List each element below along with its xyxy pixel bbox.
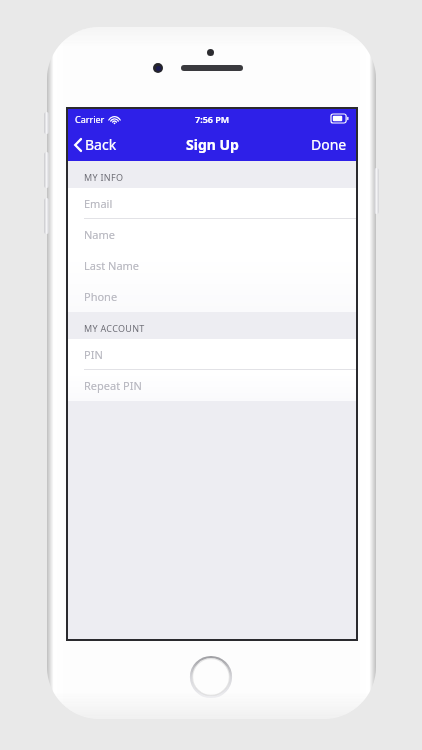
button[interactable]: Name xyxy=(68,219,356,250)
staticText: Carrier xyxy=(75,113,105,125)
staticText: PIN xyxy=(84,347,103,362)
button[interactable]: Home xyxy=(189,655,233,699)
staticText: MY ACCOUNT xyxy=(84,322,145,334)
staticText: Last Name xyxy=(84,258,140,273)
staticText: Back xyxy=(85,135,117,154)
button[interactable]: Side button xyxy=(44,112,49,134)
button[interactable]: Email xyxy=(68,188,356,219)
staticText: Done xyxy=(311,135,347,154)
staticText: 7:56 PM xyxy=(195,113,230,125)
button[interactable]: Done xyxy=(302,128,356,161)
staticText: Repeat PIN xyxy=(84,378,142,393)
staticText: MY INFO xyxy=(84,171,124,183)
button[interactable]: Side button xyxy=(44,198,49,234)
button[interactable]: Repeat PIN xyxy=(68,370,356,401)
button[interactable]: Side button xyxy=(374,168,379,214)
button[interactable]: Phone xyxy=(68,281,356,312)
button[interactable]: PIN xyxy=(68,339,356,370)
button[interactable]: Side button xyxy=(44,152,49,188)
staticText: Sign Up xyxy=(186,135,239,154)
button[interactable]: Last Name xyxy=(68,250,356,281)
staticText: Name xyxy=(84,227,116,242)
staticText: Email xyxy=(84,196,113,211)
button[interactable]: Back xyxy=(68,128,125,161)
staticText: Phone xyxy=(84,289,118,304)
